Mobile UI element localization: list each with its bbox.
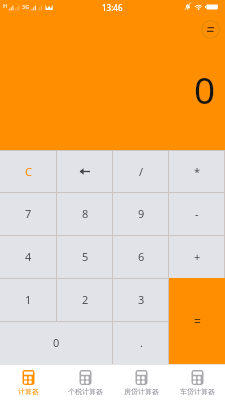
staticText: 13:46 xyxy=(102,2,123,13)
staticText: = xyxy=(194,313,201,329)
button[interactable]: 3 xyxy=(113,278,169,321)
staticText: 0 xyxy=(53,335,60,350)
button[interactable]: 计算器 xyxy=(0,365,57,400)
button[interactable]: . xyxy=(113,321,169,364)
staticText: / xyxy=(139,164,144,179)
staticText: 计算器 xyxy=(18,387,39,396)
button[interactable]: 1 xyxy=(0,278,57,321)
button[interactable]: = xyxy=(169,278,225,364)
staticText: C xyxy=(25,164,32,179)
button[interactable]: 个税计算器 xyxy=(57,365,113,400)
staticText: 3 xyxy=(138,292,145,307)
staticText: . xyxy=(140,335,143,350)
button[interactable]: 0 xyxy=(0,321,113,364)
button[interactable]: + xyxy=(169,235,225,278)
staticText: 8 xyxy=(82,206,89,221)
button[interactable]: Backspace xyxy=(57,150,113,192)
staticText: 1 xyxy=(25,292,32,307)
button[interactable]: / xyxy=(113,150,169,192)
staticText: 2 xyxy=(82,292,89,307)
staticText: 3G xyxy=(22,3,30,10)
button[interactable]: 车贷计算器 xyxy=(169,365,225,400)
button[interactable]: Menu xyxy=(201,20,220,39)
staticText: 9 xyxy=(138,206,145,221)
button[interactable]: 6 xyxy=(113,235,169,278)
staticText: 0 xyxy=(194,64,216,114)
staticText: 车贷计算器 xyxy=(180,387,215,396)
button[interactable]: 7 xyxy=(0,192,57,235)
button[interactable]: * xyxy=(169,150,225,192)
staticText: 6 xyxy=(138,249,145,264)
button[interactable]: 8 xyxy=(57,192,113,235)
button[interactable]: 2 xyxy=(57,278,113,321)
staticText: 4 xyxy=(25,249,32,264)
staticText: - xyxy=(195,206,199,221)
staticText: 7 xyxy=(25,206,32,221)
staticText: 5 xyxy=(82,249,89,264)
button[interactable]: 9 xyxy=(113,192,169,235)
staticText: * xyxy=(194,164,201,179)
button[interactable]: C xyxy=(0,150,57,192)
staticText: 房贷计算器 xyxy=(124,387,159,396)
button[interactable]: 5 xyxy=(57,235,113,278)
staticText: H xyxy=(3,2,8,10)
staticText: 个税计算器 xyxy=(68,387,103,396)
button[interactable]: 房贷计算器 xyxy=(113,365,169,400)
button[interactable]: 4 xyxy=(0,235,57,278)
staticText: + xyxy=(194,249,201,264)
button[interactable]: - xyxy=(169,192,225,235)
